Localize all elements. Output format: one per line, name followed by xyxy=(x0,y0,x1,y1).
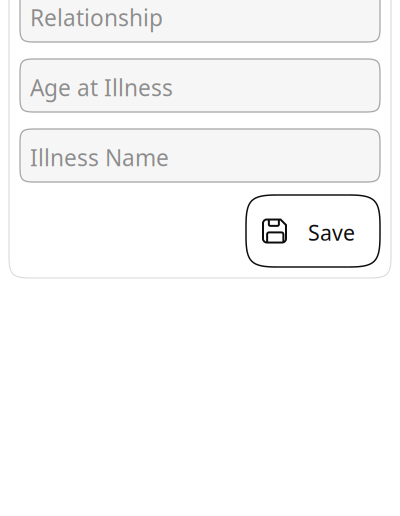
button[interactable]: Age at Illness xyxy=(20,59,380,112)
button[interactable]: Illness Name xyxy=(20,129,380,182)
staticText: Save xyxy=(308,218,355,247)
staticText: Age at Illness xyxy=(30,72,173,102)
button[interactable]: Relationship xyxy=(20,0,380,42)
staticText: Illness Name xyxy=(30,142,169,172)
button[interactable]: Save xyxy=(246,195,380,267)
staticText: Relationship xyxy=(30,2,163,32)
